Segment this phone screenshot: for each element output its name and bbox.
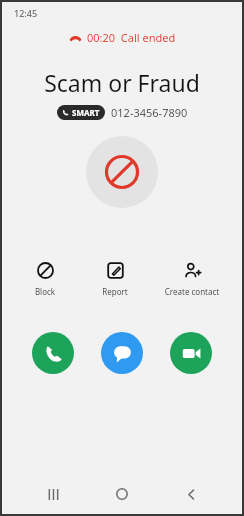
staticText: Block — [16, 286, 74, 297]
staticText: Scam or Fraud — [2, 67, 242, 98]
button[interactable]: Create contact — [156, 260, 228, 299]
staticText: 12:45 — [14, 7, 38, 19]
button[interactable]: Report — [86, 260, 144, 299]
staticText: 00:20 Call ended — [87, 30, 176, 45]
button[interactable]: Recent apps — [38, 479, 68, 509]
button[interactable]: Block — [16, 260, 74, 299]
button[interactable]: Call — [32, 332, 74, 374]
button[interactable]: Back — [176, 479, 206, 509]
staticText: SMART — [72, 107, 100, 118]
button[interactable]: Video call — [170, 332, 212, 374]
button[interactable]: Home — [107, 479, 137, 509]
staticText: Create contact — [156, 286, 228, 297]
staticText: 012-3456-7890 — [111, 105, 188, 120]
button[interactable]: Message — [101, 332, 143, 374]
staticText: Report — [86, 286, 144, 297]
